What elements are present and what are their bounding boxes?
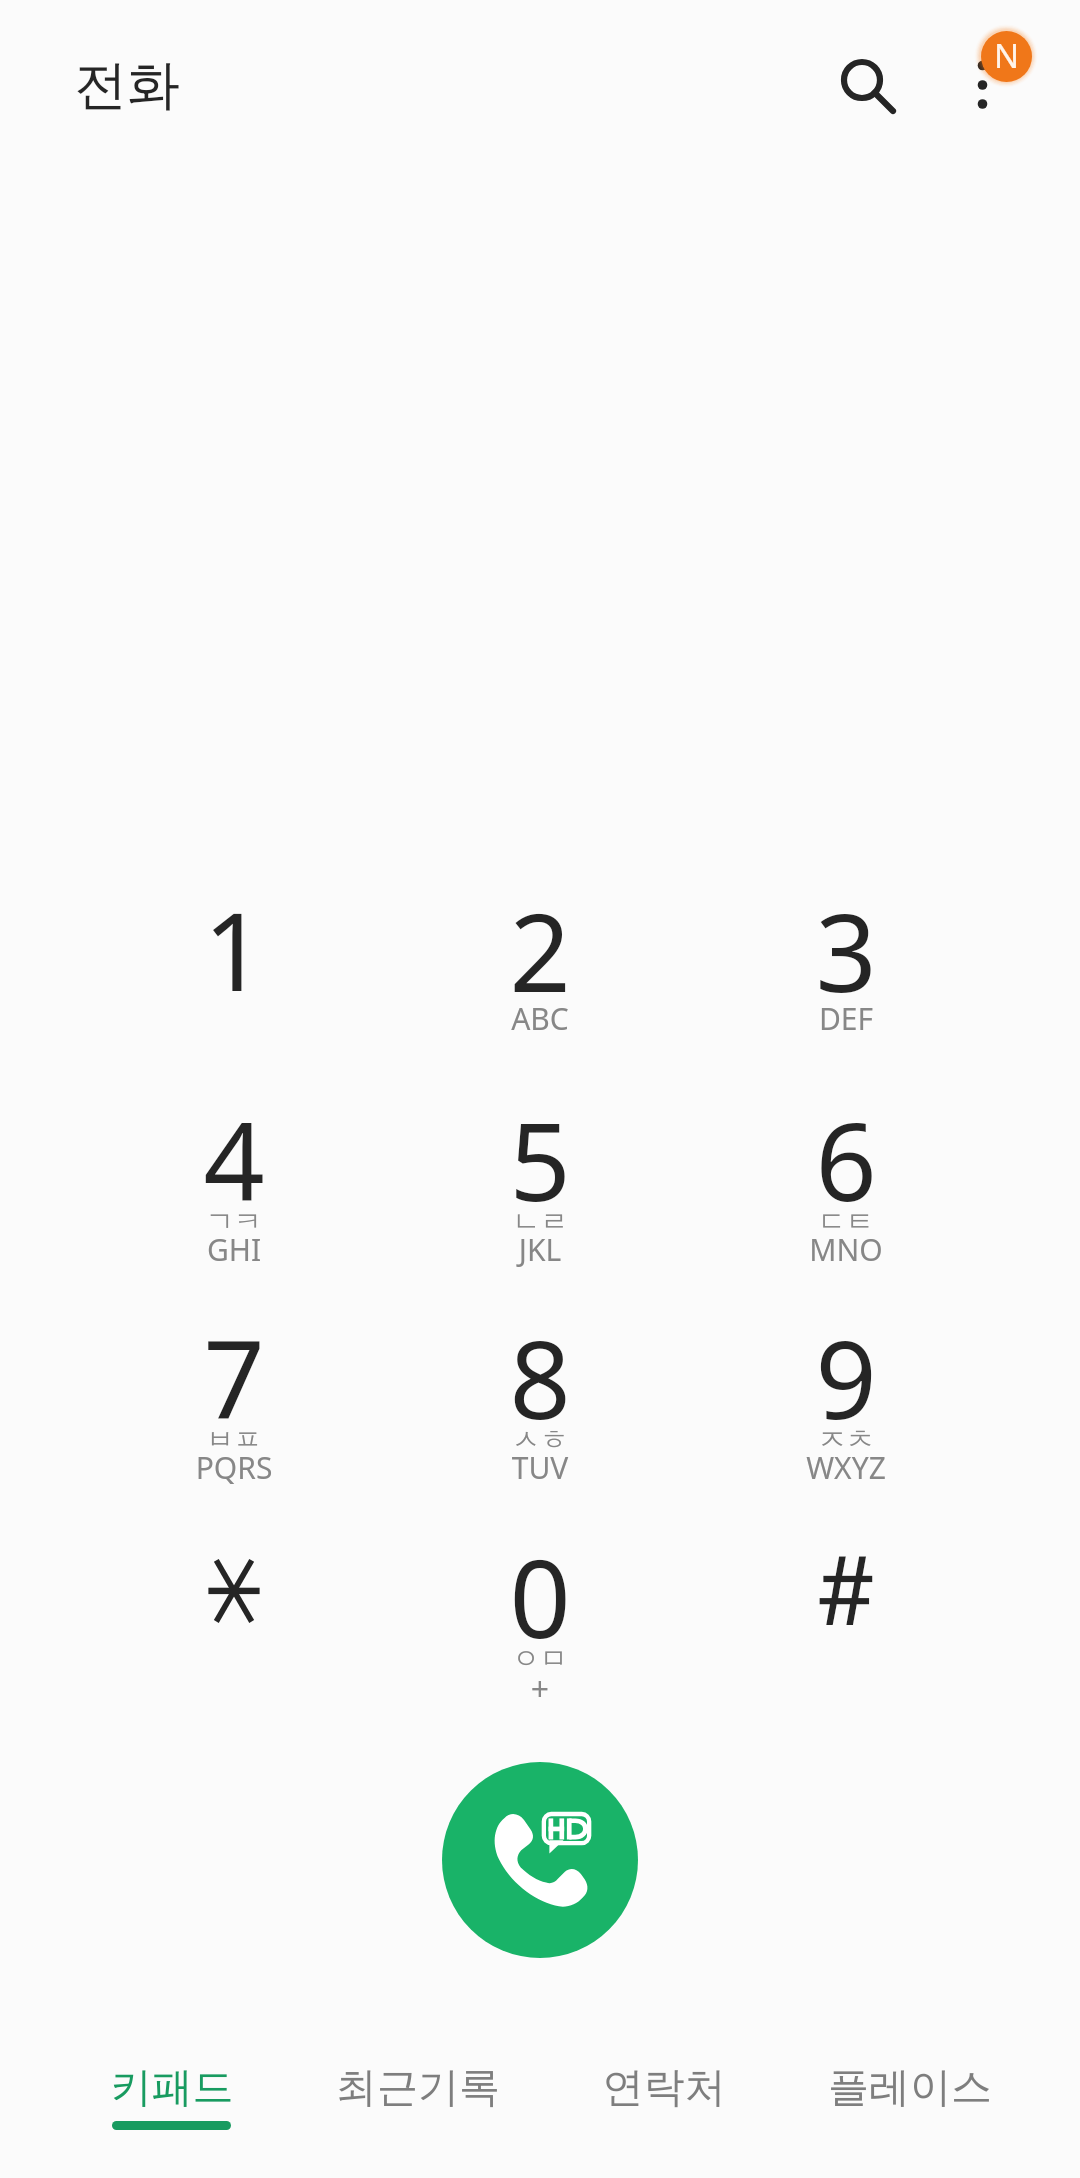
staticText: GHI bbox=[81, 1229, 387, 1270]
button[interactable]: 연락처 bbox=[541, 2040, 787, 2178]
staticText: TUV bbox=[387, 1447, 693, 1488]
staticText: PQRS bbox=[81, 1447, 387, 1488]
button[interactable]: 최근기록 bbox=[295, 2040, 541, 2178]
staticText: 전화 bbox=[74, 52, 180, 119]
button[interactable]: Call bbox=[442, 1762, 638, 1958]
staticText: 4 bbox=[81, 1087, 387, 1233]
staticText: 키패드 bbox=[49, 2062, 295, 2114]
staticText: 최근기록 bbox=[295, 2062, 541, 2114]
staticText: 6 bbox=[693, 1087, 999, 1233]
button[interactable]: ＃ bbox=[693, 1520, 999, 1739]
button[interactable]: More options bbox=[922, 0, 1047, 150]
button[interactable]: 4 bbox=[81, 1082, 387, 1301]
button[interactable]: 8 bbox=[387, 1301, 693, 1520]
staticText: ㅅㅎ bbox=[387, 1422, 693, 1457]
staticText: 1 bbox=[81, 877, 387, 1023]
staticText: 7 bbox=[81, 1305, 387, 1451]
staticText: ㄴㄹ bbox=[387, 1204, 693, 1239]
button[interactable]: 3 bbox=[693, 863, 999, 1082]
button[interactable]: 0 bbox=[387, 1520, 693, 1739]
button[interactable]: 전화 bbox=[28, 12, 218, 152]
staticText: 2 bbox=[387, 878, 693, 1024]
staticText: 플레이스 bbox=[787, 2062, 1033, 2114]
button[interactable]: 6 bbox=[693, 1082, 999, 1301]
button[interactable]: 9 bbox=[693, 1301, 999, 1520]
staticText: DEF bbox=[693, 998, 999, 1039]
staticText: ABC bbox=[387, 998, 693, 1039]
button[interactable]: 5 bbox=[387, 1082, 693, 1301]
staticText: ㅂㅍ bbox=[81, 1422, 387, 1457]
staticText: JKL bbox=[387, 1229, 693, 1270]
staticText: + bbox=[387, 1667, 693, 1711]
staticText: 3 bbox=[693, 878, 999, 1024]
button[interactable]: 키패드 bbox=[49, 2040, 295, 2178]
staticText: ㅈㅊ bbox=[693, 1422, 999, 1457]
staticText: ㄷㅌ bbox=[693, 1204, 999, 1239]
button[interactable]: 7 bbox=[81, 1301, 387, 1520]
button[interactable] bbox=[81, 1520, 387, 1739]
button[interactable]: 2 bbox=[387, 863, 693, 1082]
staticText: ㄱㅋ bbox=[81, 1204, 387, 1239]
staticText: WXYZ bbox=[693, 1447, 999, 1488]
staticText: 9 bbox=[693, 1305, 999, 1451]
staticText: MNO bbox=[693, 1229, 999, 1270]
button[interactable]: 플레이스 bbox=[787, 2040, 1033, 2178]
staticText: N bbox=[994, 33, 1020, 78]
button[interactable]: 1 bbox=[81, 863, 387, 1082]
staticText: 8 bbox=[387, 1305, 693, 1451]
staticText: 5 bbox=[387, 1087, 693, 1233]
button[interactable]: Search bbox=[802, 20, 922, 140]
staticText: ㅇㅁ bbox=[387, 1641, 693, 1676]
staticText: 연락처 bbox=[541, 2062, 787, 2114]
staticText: 0 bbox=[387, 1524, 693, 1670]
staticText: ＃ bbox=[693, 1529, 999, 1655]
